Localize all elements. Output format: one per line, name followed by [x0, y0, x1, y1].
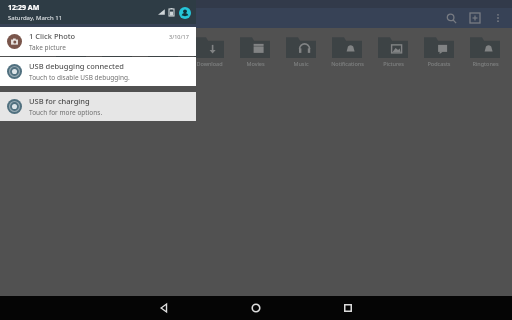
- staticText: Take picture: [29, 43, 66, 52]
- button[interactable]: Menu: [6, 9, 24, 27]
- button[interactable]: Download: [186, 32, 232, 67]
- button[interactable]: User profile: [178, 6, 191, 19]
- button[interactable]: Notifications: [324, 32, 370, 67]
- staticText: USB debugging connected: [29, 61, 124, 71]
- staticText: 1ClickPhoto: [10, 60, 41, 67]
- staticText: Touch for more options.: [29, 108, 103, 117]
- button[interactable]: Home: [239, 296, 273, 320]
- button[interactable]: Pictures: [370, 32, 416, 67]
- button[interactable]: USB for charging: [0, 92, 196, 121]
- button[interactable]: Back: [147, 296, 181, 320]
- button[interactable]: Alarms: [48, 32, 94, 67]
- staticText: 1 Click Photo: [29, 31, 76, 41]
- button[interactable]: Search: [442, 9, 460, 27]
- staticText: Notifications: [331, 60, 364, 67]
- staticText: Pictures: [383, 60, 404, 67]
- button[interactable]: Home folder: [34, 9, 52, 27]
- staticText: Music: [293, 60, 309, 67]
- button[interactable]: 1ClickPhoto: [2, 32, 48, 67]
- button[interactable]: DCIM: [140, 32, 186, 67]
- button[interactable]: Movies: [232, 32, 278, 67]
- staticText: Podcasts: [427, 60, 451, 67]
- staticText: Alarms: [62, 60, 81, 67]
- staticText: 3/10/17: [169, 33, 189, 40]
- staticText: Android: [107, 60, 128, 67]
- button[interactable]: Recents: [331, 296, 365, 320]
- button[interactable]: New window: [466, 9, 484, 27]
- button[interactable]: Podcasts: [416, 32, 462, 67]
- button[interactable]: Ringtones: [462, 32, 508, 67]
- staticText: Ringtones: [472, 60, 499, 67]
- button[interactable]: More options: [490, 10, 506, 26]
- staticText: Download: [196, 60, 223, 67]
- button[interactable]: Android: [94, 32, 140, 67]
- staticText: Saturday, March 11: [8, 14, 63, 22]
- button[interactable]: 1 Click Photo: [0, 27, 196, 56]
- staticText: USB for charging: [29, 96, 90, 106]
- button[interactable]: Music: [278, 32, 324, 67]
- staticText: Movies: [246, 60, 265, 67]
- button[interactable]: USB debugging connected: [0, 57, 196, 86]
- staticText: Touch to disable USB debugging.: [29, 73, 130, 82]
- staticText: 12:29 AM: [8, 3, 40, 13]
